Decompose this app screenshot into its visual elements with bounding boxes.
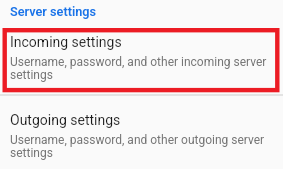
- staticText: Username, password, and other outgoing s…: [10, 133, 273, 160]
- staticText: Server settings: [10, 4, 97, 19]
- button[interactable]: Incoming settings: [0, 28, 283, 91]
- button[interactable]: Outgoing settings: [0, 106, 283, 169]
- staticText: Incoming settings: [10, 34, 122, 50]
- staticText: Username, password, and other incoming s…: [10, 55, 273, 82]
- staticText: Outgoing settings: [10, 112, 121, 128]
